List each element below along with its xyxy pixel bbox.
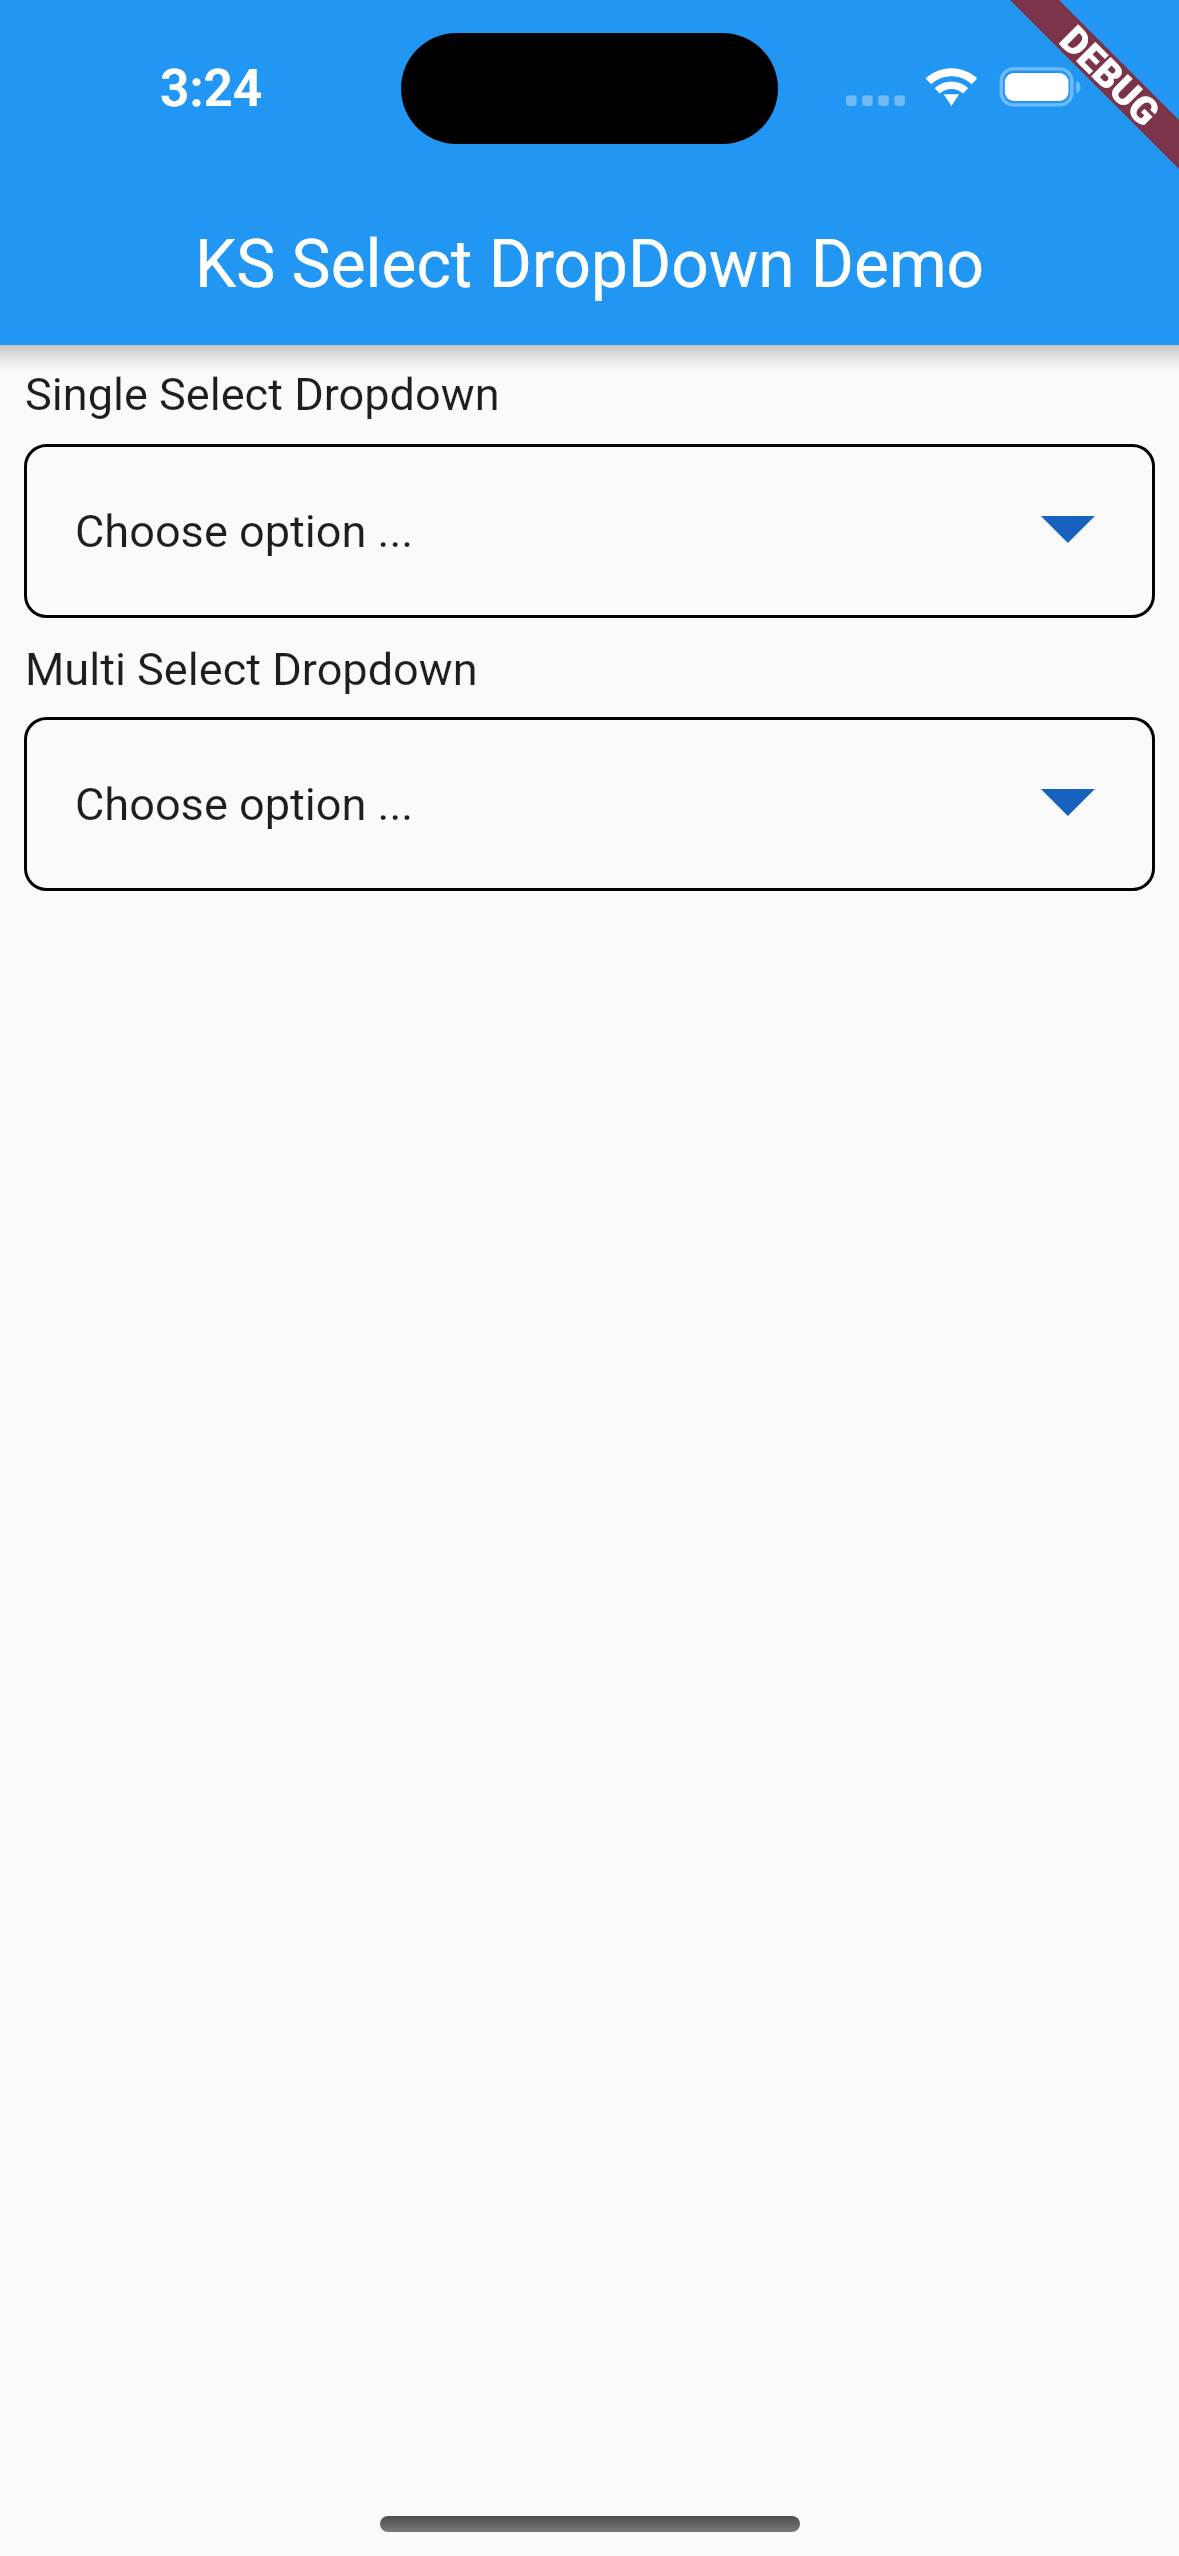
other: Debug banner — [0, 0, 1179, 345]
staticText: KS Select DropDown Demo — [0, 226, 1179, 303]
button[interactable]: Choose option — [24, 717, 1155, 891]
staticText: 3:24 — [160, 58, 263, 118]
staticText: Choose option ... — [75, 505, 414, 558]
button[interactable]: Choose option — [24, 444, 1155, 618]
staticText: Choose option ... — [75, 778, 414, 831]
staticText: Multi Select Dropdown — [25, 643, 478, 696]
staticText: Single Select Dropdown — [25, 368, 500, 421]
